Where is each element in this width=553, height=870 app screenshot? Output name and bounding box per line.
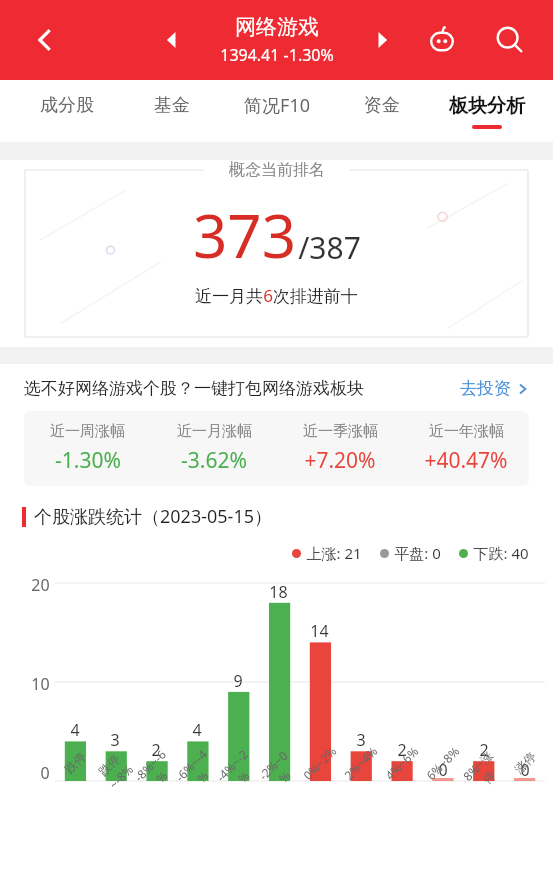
staticText: -8%~-6% bbox=[130, 745, 181, 797]
staticText: 8%~涨停 bbox=[457, 745, 510, 798]
staticText: 2 bbox=[479, 739, 489, 761]
staticText: 概念当前排名 bbox=[229, 160, 325, 180]
button[interactable]: Previous sector bbox=[152, 20, 192, 60]
staticText: +7.20% bbox=[304, 446, 376, 475]
staticText: +40.47% bbox=[424, 446, 508, 475]
button[interactable]: 选不好网络游戏个股？一键打包网络游戏板块 bbox=[24, 378, 529, 399]
staticText: 下跌: 40 bbox=[473, 543, 529, 563]
staticText: -2%~0% bbox=[253, 745, 304, 797]
staticText: -3.62% bbox=[181, 446, 247, 475]
staticText: 平盘: 0 bbox=[394, 543, 441, 563]
staticText: 10 bbox=[31, 673, 50, 695]
button[interactable]: Search bbox=[487, 17, 533, 63]
staticText: -6%~-4% bbox=[171, 745, 222, 797]
button[interactable]: AI assistant bbox=[419, 17, 465, 63]
button[interactable]: 简况F10 bbox=[224, 80, 329, 142]
button[interactable]: 成分股 bbox=[14, 80, 119, 142]
staticText: 6%~8% bbox=[422, 743, 463, 783]
staticText: 4 bbox=[70, 719, 80, 741]
staticText: 近一月共6次排进前十 bbox=[195, 284, 358, 307]
staticText: 9 bbox=[233, 670, 243, 692]
staticText: 板块分析 bbox=[449, 94, 525, 118]
staticText: 近一周涨幅 bbox=[50, 422, 125, 441]
staticText: 4 bbox=[192, 719, 202, 741]
staticText: 简况F10 bbox=[244, 93, 310, 118]
staticText: -1.30% bbox=[55, 446, 121, 475]
staticText: 资金 bbox=[364, 94, 400, 117]
button[interactable]: 基金 bbox=[119, 80, 224, 142]
staticText: 14 bbox=[310, 620, 329, 642]
staticText: 2%~4% bbox=[340, 743, 381, 783]
staticText: 3 bbox=[110, 729, 120, 751]
staticText: 3 bbox=[356, 729, 366, 751]
staticText: 选不好网络游戏个股？一键打包网络游戏板块 bbox=[24, 378, 364, 399]
staticText: 成分股 bbox=[40, 94, 94, 117]
staticText: 0 bbox=[40, 762, 50, 784]
staticText: 个股涨跌统计（2023-05-15） bbox=[34, 504, 272, 529]
staticText: 近一月涨幅 bbox=[177, 422, 252, 441]
staticText: 4%~6% bbox=[381, 743, 422, 783]
staticText: 373 bbox=[193, 194, 296, 276]
staticText: 18 bbox=[269, 581, 288, 603]
button[interactable]: 板块分析 bbox=[434, 80, 539, 142]
staticText: 1394.41 -1.30% bbox=[220, 44, 334, 66]
staticText: 跌停~-8% bbox=[89, 745, 140, 796]
staticText: 20 bbox=[31, 574, 50, 596]
staticText: 近一季涨幅 bbox=[303, 422, 378, 441]
staticText: 0%~2% bbox=[299, 743, 340, 783]
button[interactable]: 资金 bbox=[329, 80, 434, 142]
staticText: -4%~-2% bbox=[212, 745, 263, 797]
staticText: 近一年涨幅 bbox=[429, 422, 504, 441]
staticText: 去投资 bbox=[460, 378, 511, 399]
staticText: 涨停 bbox=[511, 749, 539, 776]
staticText: 0 bbox=[520, 759, 530, 781]
button[interactable]: Back bbox=[22, 17, 68, 63]
staticText: 2 bbox=[151, 739, 161, 761]
staticText: 上涨: 21 bbox=[306, 543, 362, 563]
staticText: 基金 bbox=[154, 94, 190, 117]
button[interactable]: Next sector bbox=[362, 20, 402, 60]
staticText: /387 bbox=[298, 227, 361, 268]
staticText: 网络游戏 bbox=[235, 14, 319, 40]
staticText: 2 bbox=[397, 739, 407, 761]
staticText: 跌停 bbox=[61, 749, 89, 776]
staticText: 0 bbox=[438, 759, 448, 781]
